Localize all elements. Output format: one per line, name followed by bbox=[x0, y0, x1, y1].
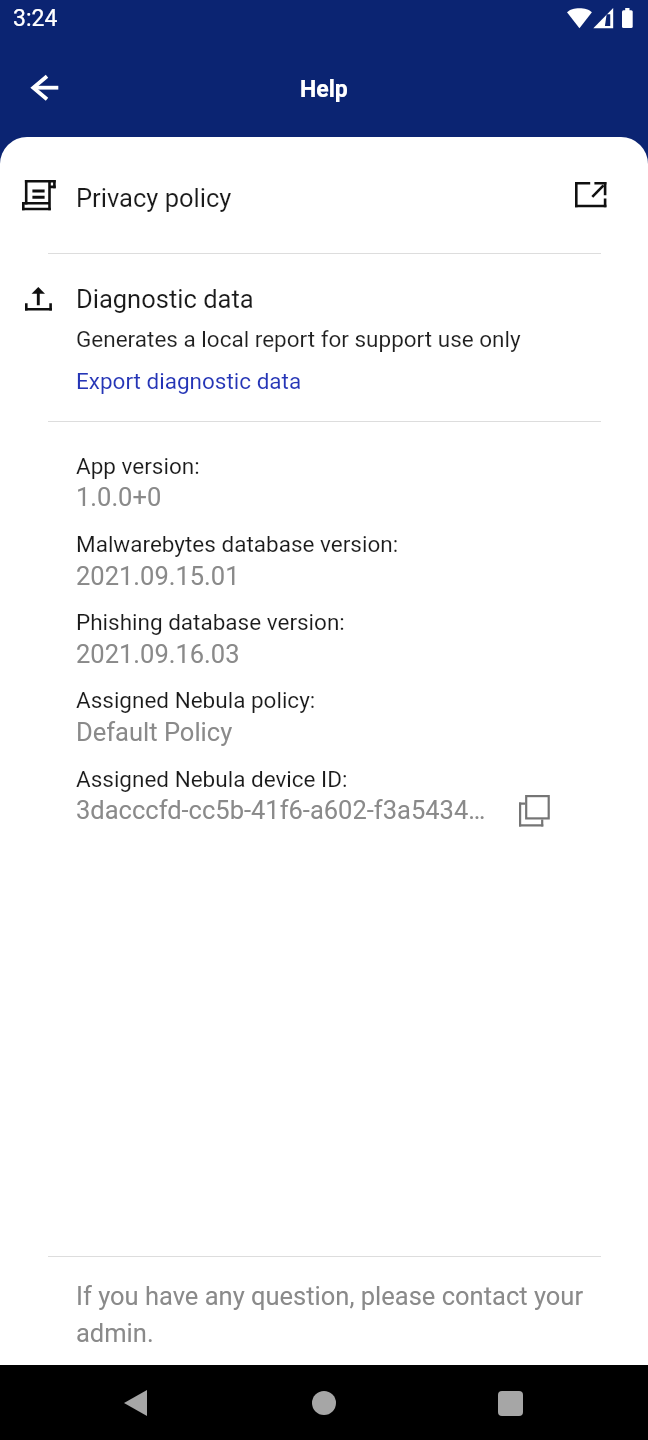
staticText: admin. bbox=[76, 1318, 154, 1348]
staticText: Assigned Nebula device ID: bbox=[76, 766, 348, 792]
staticText: App version: bbox=[76, 453, 200, 479]
staticText: Diagnostic data bbox=[76, 284, 254, 314]
staticText: Help bbox=[300, 76, 348, 103]
staticText: 2021.09.16.03 bbox=[76, 639, 240, 669]
staticText: Malwarebytes database version: bbox=[76, 531, 399, 557]
button[interactable]: Privacy policy bbox=[0, 137, 648, 253]
staticText: Privacy policy bbox=[76, 183, 232, 213]
staticText: Export diagnostic data bbox=[76, 368, 302, 394]
staticText: 3dacccfd-cc5b-41f6-a602-f3a5434… bbox=[76, 795, 486, 825]
button[interactable]: Back bbox=[111, 1379, 159, 1427]
staticText: Phishing database version: bbox=[76, 609, 345, 635]
button[interactable]: Copy device ID bbox=[509, 786, 559, 836]
staticText: Assigned Nebula policy: bbox=[76, 687, 316, 713]
button[interactable]: Recent apps bbox=[486, 1379, 534, 1427]
button[interactable]: Open privacy policy in browser bbox=[563, 167, 619, 223]
staticText: 2021.09.15.01 bbox=[76, 561, 240, 591]
button[interactable]: Home bbox=[300, 1379, 348, 1427]
staticText: 3:24 bbox=[13, 5, 58, 32]
staticText: 1.0.0+0 bbox=[76, 482, 162, 512]
staticText: Generates a local report for support use… bbox=[76, 326, 521, 352]
button[interactable]: Back bbox=[19, 62, 73, 116]
staticText: If you have any question, please contact… bbox=[76, 1281, 584, 1311]
button[interactable]: Export diagnostic data bbox=[76, 365, 302, 397]
staticText: Default Policy bbox=[76, 717, 233, 747]
